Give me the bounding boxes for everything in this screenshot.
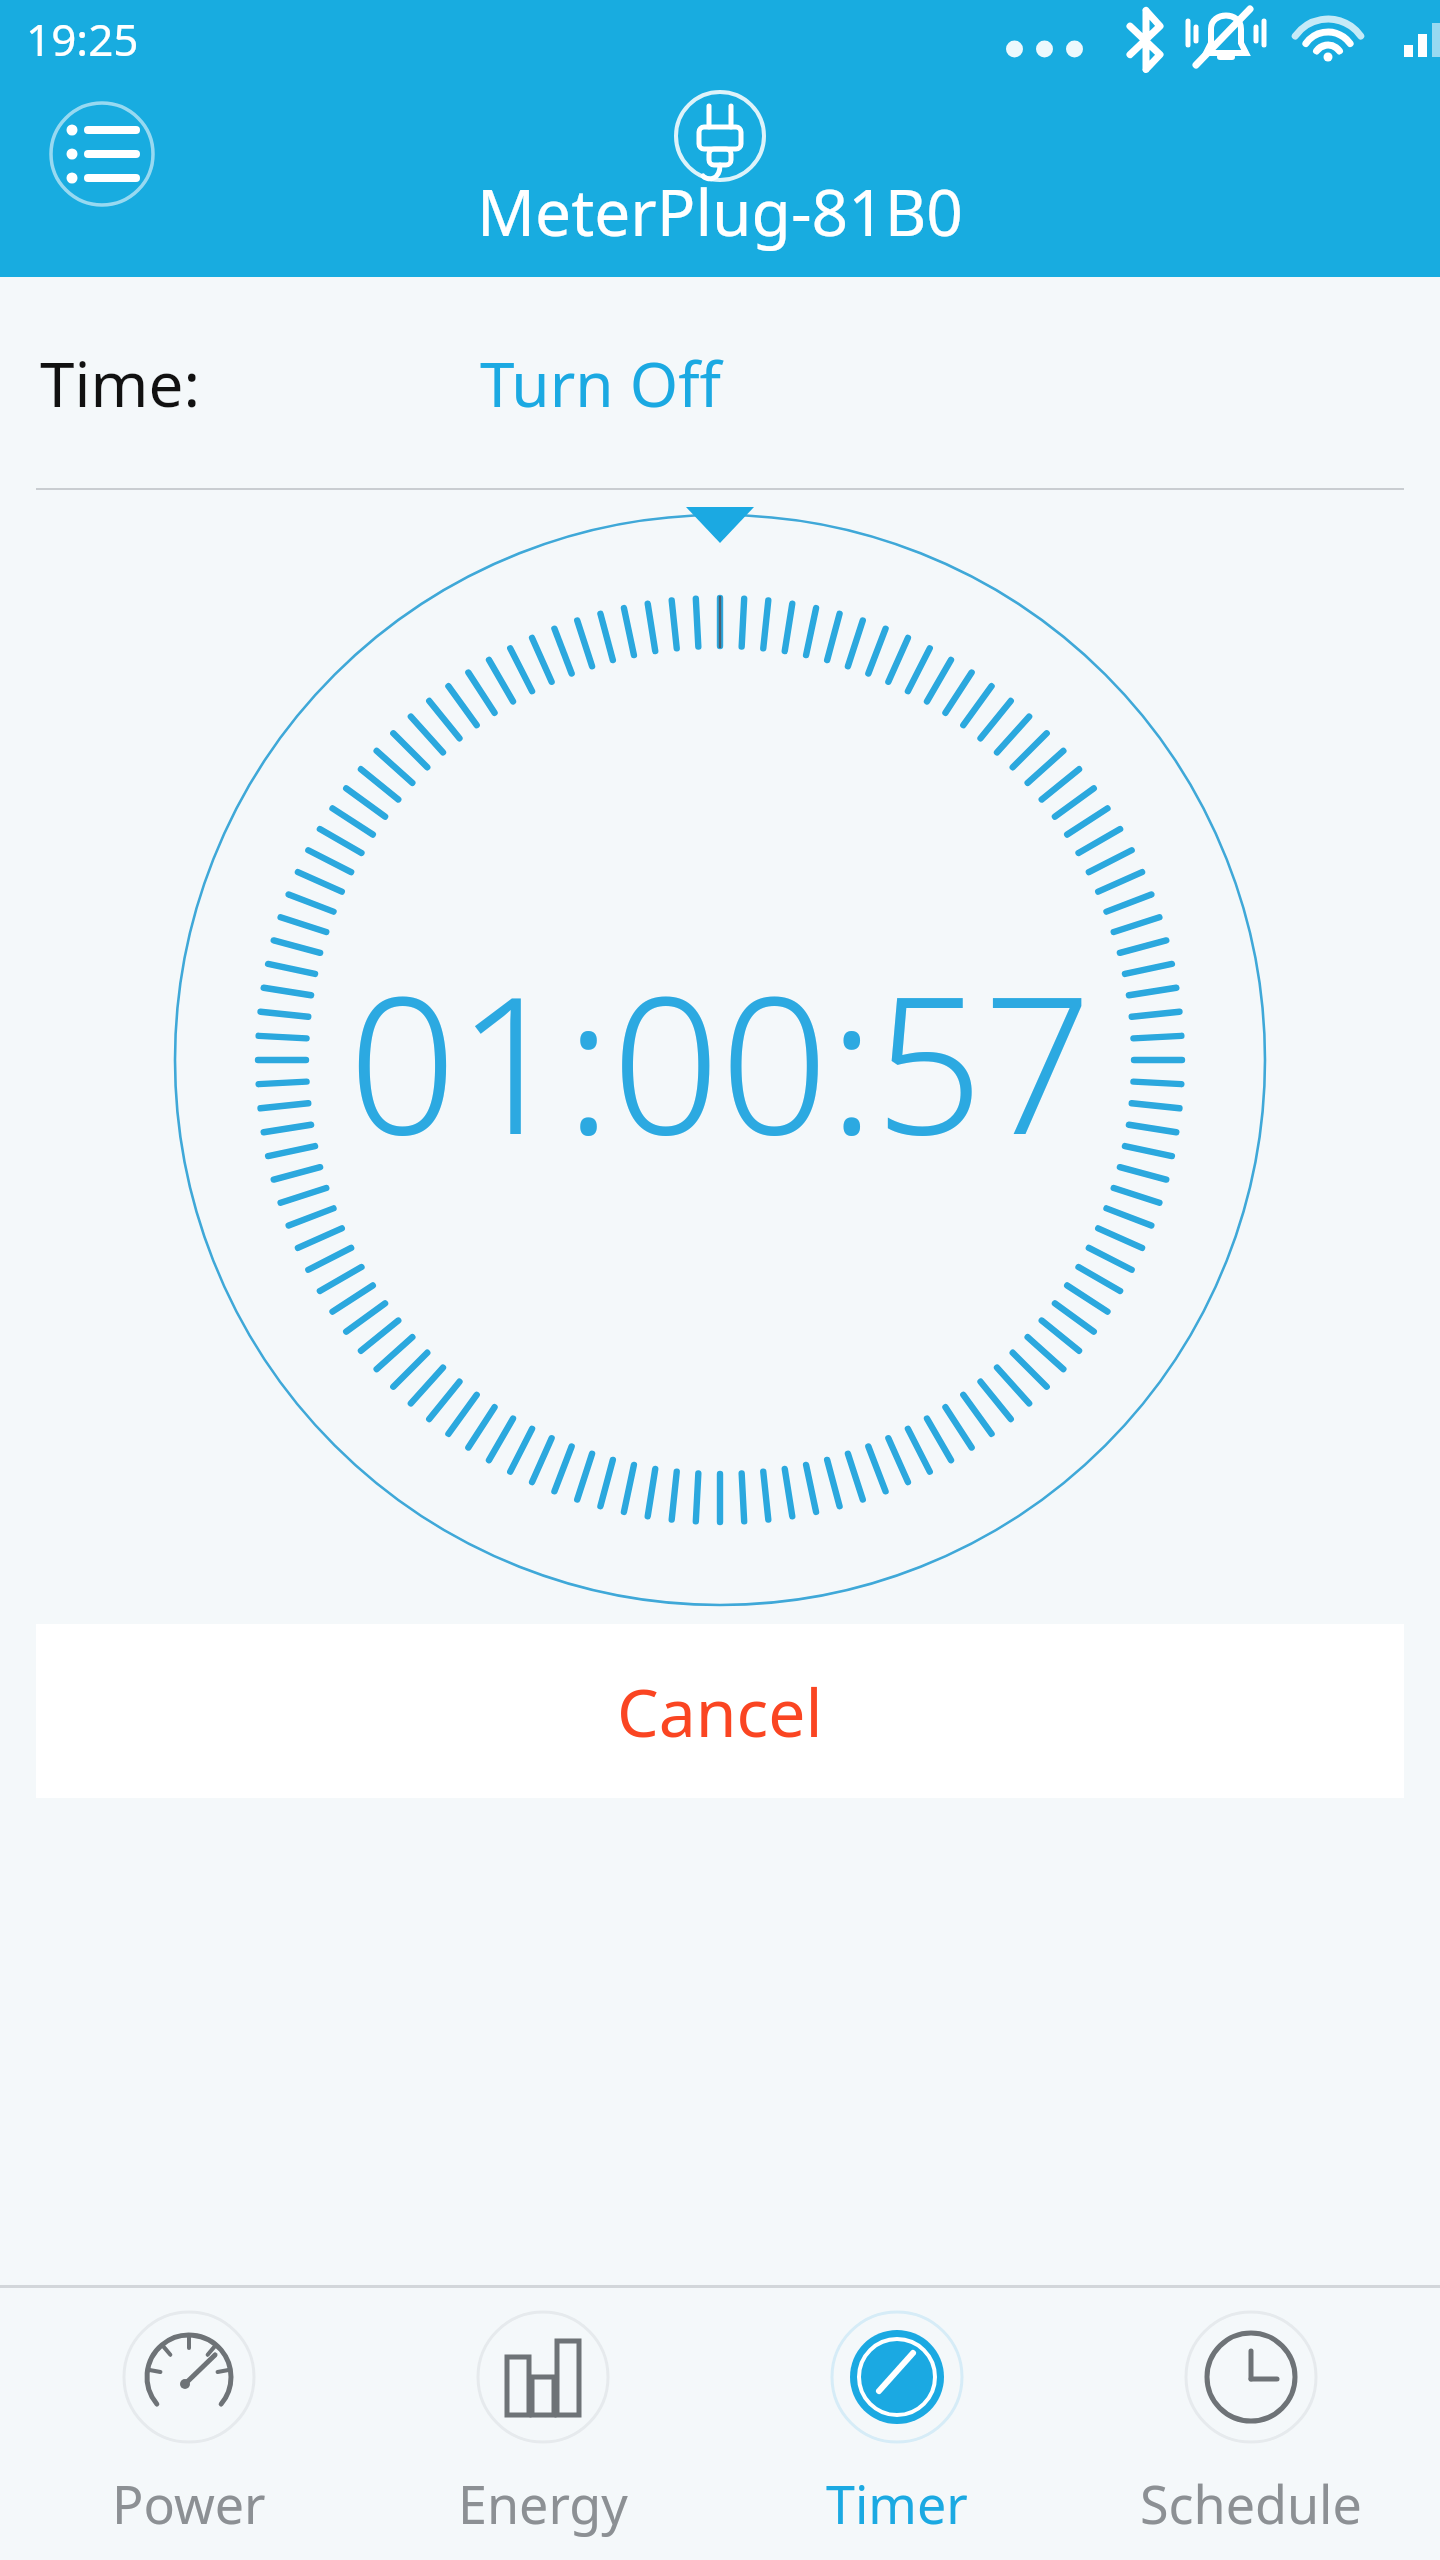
staticText: Energy	[458, 2468, 628, 2539]
staticText: Cancel	[617, 1666, 823, 1756]
button[interactable]: Power	[24, 2288, 354, 2560]
button[interactable]: Schedule	[1086, 2288, 1416, 2560]
staticText: 19:25	[26, 9, 139, 69]
button[interactable]: Turn Off	[480, 313, 960, 453]
staticText: MeterPlug-81B0	[477, 168, 963, 255]
button[interactable]: Timer	[732, 2288, 1062, 2560]
button[interactable]: Cancel	[36, 1624, 1404, 1798]
staticText: Power	[112, 2468, 266, 2539]
staticText: Time:	[40, 341, 201, 425]
staticText: Schedule	[1140, 2468, 1362, 2539]
staticText: 01:00:57	[348, 931, 1092, 1190]
button[interactable]: Energy	[378, 2288, 708, 2560]
staticText: Timer	[826, 2468, 968, 2539]
staticText: Turn Off	[480, 341, 721, 425]
button[interactable]: Device list	[48, 100, 156, 208]
